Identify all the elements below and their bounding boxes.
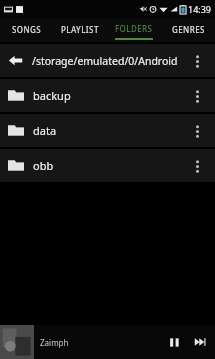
button[interactable]: Zaimph [0, 325, 215, 359]
button[interactable]: SONGS [0, 18, 53, 42]
staticText: FOLDERS [115, 23, 153, 34]
button[interactable]: backup [0, 79, 215, 112]
button[interactable]: obb [0, 149, 215, 182]
button[interactable]: Next track [187, 325, 213, 359]
button[interactable]: More options [187, 82, 207, 110]
staticText: PLAYLIST [61, 24, 99, 35]
button[interactable]: PLAYLIST [53, 18, 107, 42]
button[interactable]: data [0, 114, 215, 147]
staticText: data [33, 123, 187, 138]
staticText: obb [33, 158, 187, 173]
staticText: /storage/emulated/0/Android [32, 54, 187, 68]
button[interactable]: More options [187, 152, 207, 180]
other: Up one folder [8, 53, 23, 68]
staticText: GENRES [172, 24, 205, 35]
button[interactable]: Pause [161, 325, 187, 359]
button[interactable]: More options [187, 47, 207, 75]
button[interactable]: FOLDERS [107, 18, 161, 42]
staticText: 14:39 [188, 3, 212, 15]
button[interactable]: GENRES [161, 18, 215, 42]
button[interactable]: More options [187, 117, 207, 145]
button[interactable]: Up one folder [0, 44, 215, 77]
staticText: backup [33, 88, 187, 103]
staticText: SONGS [12, 24, 42, 35]
staticText: Zaimph [40, 337, 69, 348]
